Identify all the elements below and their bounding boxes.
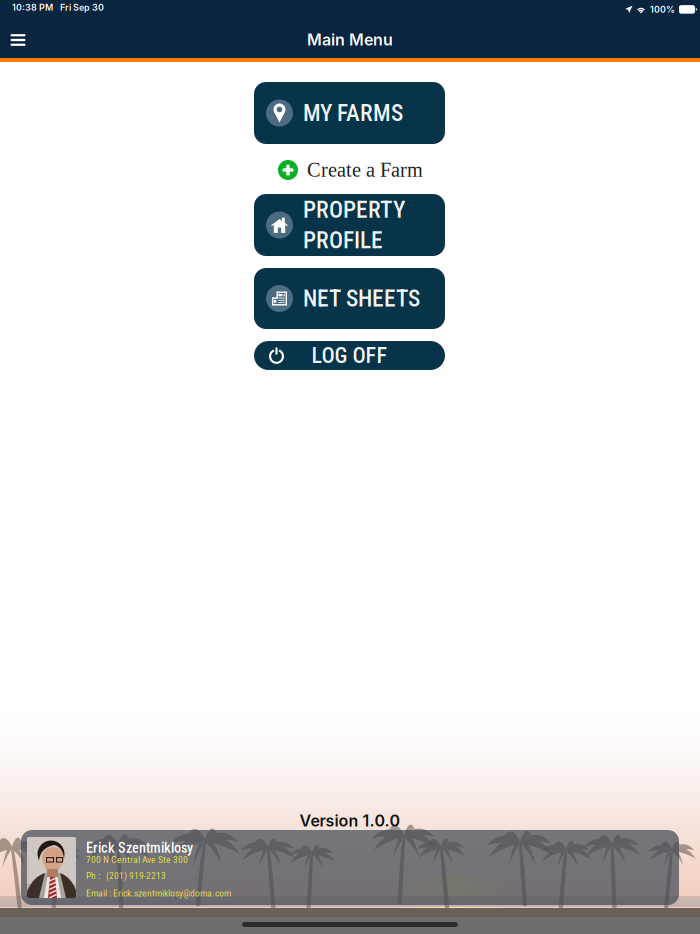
staticText: 700 N Central Ave Ste 300 bbox=[86, 854, 188, 865]
button[interactable]: Create a Farm bbox=[254, 155, 422, 185]
staticText: Ph : (201) 919-2213 bbox=[86, 870, 166, 881]
button[interactable]: LOG OFF bbox=[254, 341, 445, 370]
staticText: MY FARMS bbox=[303, 99, 403, 127]
staticText: Email : Erick.szentmiklosy@doma.com bbox=[86, 887, 231, 899]
button[interactable]: Erick Szentmiklosy bbox=[21, 830, 679, 905]
staticText: Fri Sep 30 bbox=[60, 2, 104, 13]
staticText: Version 1.0.0 bbox=[299, 811, 400, 830]
staticText: 100% bbox=[650, 4, 675, 15]
staticText: PROPERTY PROFILE bbox=[303, 196, 405, 254]
staticText: Erick Szentmiklosy bbox=[86, 839, 193, 856]
staticText: LOG OFF bbox=[311, 343, 387, 368]
staticText: 10:38 PM bbox=[12, 2, 53, 13]
button[interactable]: NET SHEETS bbox=[254, 268, 445, 329]
button[interactable]: PROPERTY PROFILE bbox=[254, 194, 445, 256]
button[interactable]: Menu bbox=[0, 23, 36, 57]
button[interactable]: MY FARMS bbox=[254, 82, 445, 144]
staticText: Create a Farm bbox=[307, 159, 423, 181]
staticText: NET SHEETS bbox=[303, 285, 420, 312]
staticText: Main Menu bbox=[307, 30, 393, 49]
